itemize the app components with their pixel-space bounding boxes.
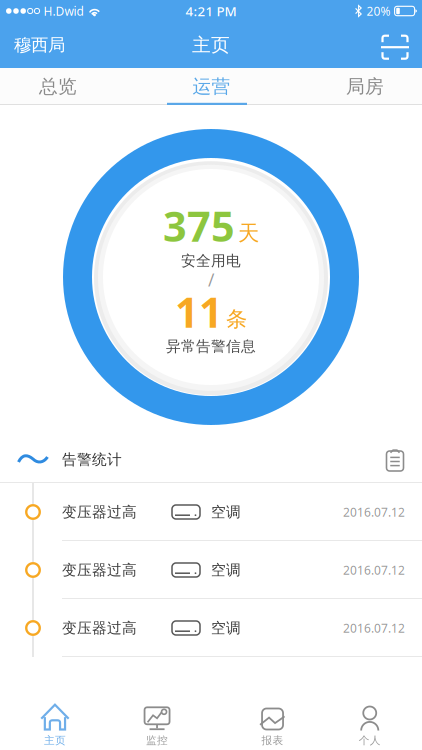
staticText: 天	[238, 220, 259, 246]
button[interactable]: 变压器过高	[0, 541, 422, 599]
staticText: 安全用电	[181, 252, 241, 270]
staticText: 2016.07.12	[343, 562, 405, 578]
staticText: 4:21 PM	[185, 2, 236, 20]
staticText: 告警统计	[62, 450, 122, 468]
staticText: 个人	[359, 734, 381, 747]
button[interactable]: 局房	[315, 68, 415, 105]
staticText: H.Dwid	[44, 3, 84, 19]
staticText: 条	[226, 306, 247, 332]
staticText: 20%	[367, 3, 391, 19]
staticText: 主页	[44, 734, 66, 747]
button[interactable]: Alarm report	[385, 448, 405, 471]
staticText: 监控	[146, 734, 168, 747]
button[interactable]: 穆西局	[14, 34, 65, 56]
button[interactable]: 运营	[161, 68, 261, 105]
staticText: 空调	[211, 619, 241, 637]
staticText: 变压器过高	[62, 503, 137, 521]
button[interactable]: 变压器过高	[0, 599, 422, 657]
staticText: 变压器过高	[62, 561, 137, 579]
staticText: 总览	[39, 75, 77, 98]
button[interactable]: 报表	[211, 703, 316, 746]
staticText: 2016.07.12	[343, 504, 405, 520]
button[interactable]: 监控	[105, 703, 211, 746]
staticText: 局房	[346, 75, 384, 98]
staticText: 11	[175, 284, 223, 339]
staticText: 报表	[262, 734, 284, 747]
button[interactable]: 变压器过高	[0, 483, 422, 541]
staticText: 变压器过高	[62, 619, 137, 637]
button[interactable]: 个人	[316, 703, 422, 746]
button[interactable]: 主页	[0, 703, 105, 746]
button[interactable]: 总览	[8, 68, 108, 105]
staticText: 空调	[211, 561, 241, 579]
staticText: /	[208, 268, 214, 291]
staticText: 空调	[211, 503, 241, 521]
staticText: 2016.07.12	[343, 620, 405, 636]
staticText: 异常告警信息	[166, 337, 256, 355]
staticText: 375	[163, 198, 235, 253]
button[interactable]: Scan	[381, 25, 409, 64]
staticText: 运营	[192, 75, 230, 98]
staticText: 穆西局	[14, 34, 65, 56]
staticText: 主页	[192, 33, 230, 56]
